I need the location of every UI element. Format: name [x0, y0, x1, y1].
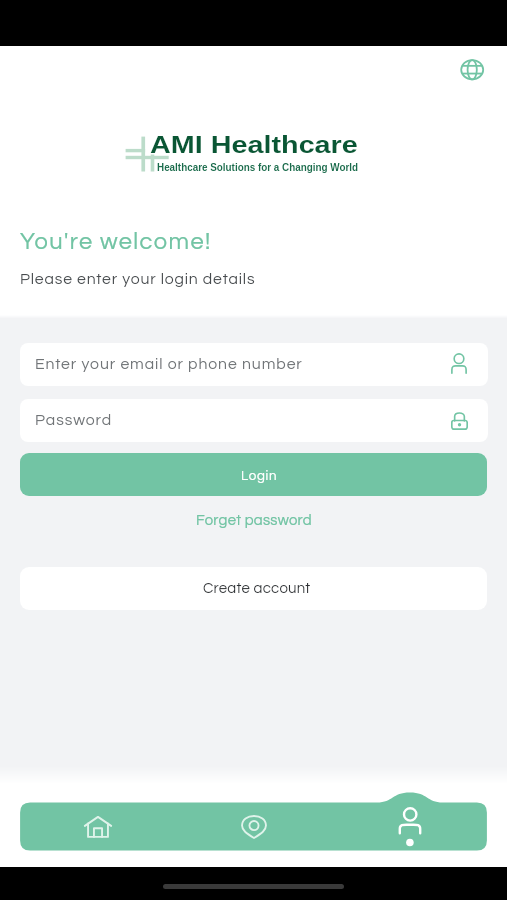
button[interactable]: Profile: [398, 806, 422, 844]
button[interactable]: Locations: [241, 815, 267, 839]
button[interactable]: Password: [20, 399, 488, 442]
staticText: AMI Healthcare: [150, 131, 359, 159]
staticText: Please enter your login details: [20, 271, 256, 287]
staticText: You're welcome!: [20, 230, 212, 254]
staticText: Create account: [203, 581, 311, 596]
staticText: Password: [35, 412, 113, 428]
staticText: Login: [241, 469, 278, 483]
button[interactable]: Change language: [455, 53, 489, 86]
button[interactable]: Enter your email or phone number: [20, 343, 488, 386]
staticText: Enter your email or phone number: [35, 356, 303, 372]
button[interactable]: Login: [20, 453, 487, 496]
staticText: Healthcare Solutions for a Changing Worl…: [157, 162, 358, 174]
button[interactable]: Create account: [20, 567, 487, 610]
button[interactable]: Forget password: [192, 509, 316, 532]
button[interactable]: Home: [84, 816, 112, 838]
